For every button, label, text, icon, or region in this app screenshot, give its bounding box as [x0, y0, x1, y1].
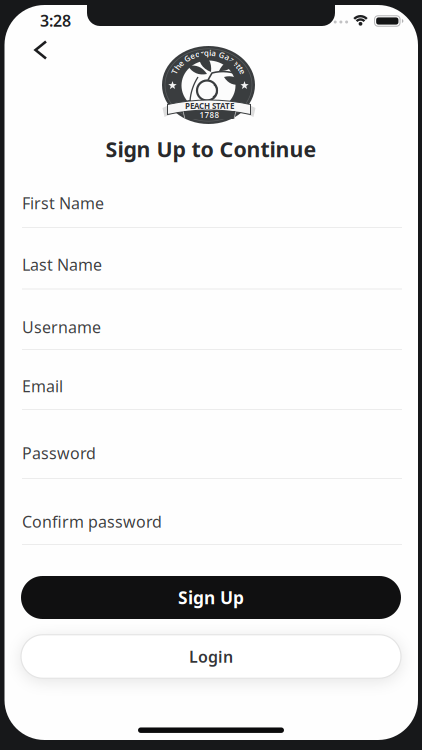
staticText: e	[240, 67, 245, 77]
staticText: h	[175, 62, 180, 72]
staticText: g	[204, 47, 209, 58]
staticText: 1788	[199, 109, 219, 120]
button[interactable]: Confirm password	[22, 501, 402, 541]
button[interactable]: Last Name	[22, 244, 402, 284]
staticText: 3:28	[40, 10, 71, 31]
button[interactable]: Username	[22, 307, 402, 347]
staticText: G	[219, 50, 225, 60]
staticText: PEACH STATE	[185, 100, 234, 111]
staticText: e	[233, 58, 238, 68]
button[interactable]: Password	[22, 433, 402, 473]
staticText: Confirm password	[22, 511, 162, 532]
button[interactable]: Login	[21, 635, 401, 678]
staticText: First Name	[22, 192, 104, 214]
button[interactable]: Back	[19, 36, 63, 64]
staticText: Email	[22, 375, 63, 397]
staticText: Sign Up to Continue	[105, 135, 316, 163]
button[interactable]: First Name	[22, 183, 402, 223]
staticText: Last Name	[22, 254, 102, 275]
staticText: z	[230, 55, 234, 65]
staticText: a	[211, 48, 216, 58]
staticText: o	[195, 49, 200, 59]
staticText: i	[209, 47, 211, 58]
staticText: T	[172, 66, 177, 77]
staticText: r	[200, 48, 203, 58]
staticText: e	[190, 51, 195, 61]
staticText: a	[225, 52, 230, 62]
button[interactable]: Sign Up	[21, 576, 401, 619]
staticText: Password	[22, 442, 96, 464]
staticText: t	[237, 61, 240, 71]
staticText: G	[184, 53, 190, 64]
staticText: e	[178, 58, 183, 68]
staticText: Username	[22, 316, 101, 338]
staticText: Login	[189, 646, 233, 667]
button[interactable]: Email	[22, 366, 402, 406]
staticText: Sign Up	[178, 586, 244, 609]
staticText: t	[239, 63, 242, 74]
